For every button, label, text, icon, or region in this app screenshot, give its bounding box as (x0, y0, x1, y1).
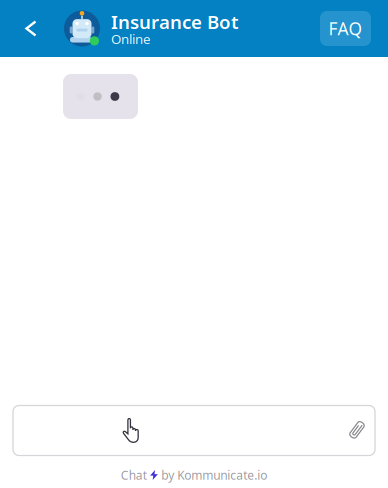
button[interactable]: Attach file (340, 405, 372, 455)
staticText: FAQ (328, 17, 362, 40)
button[interactable]: Back (9, 4, 53, 52)
button[interactable]: Write a message (14, 405, 340, 455)
button[interactable]: FAQ (320, 11, 371, 46)
staticText: Online (111, 30, 151, 48)
staticText: Chat (121, 467, 147, 483)
staticText: Insurance Bot (111, 9, 239, 34)
staticText: by Kommunicate.io (161, 467, 267, 483)
